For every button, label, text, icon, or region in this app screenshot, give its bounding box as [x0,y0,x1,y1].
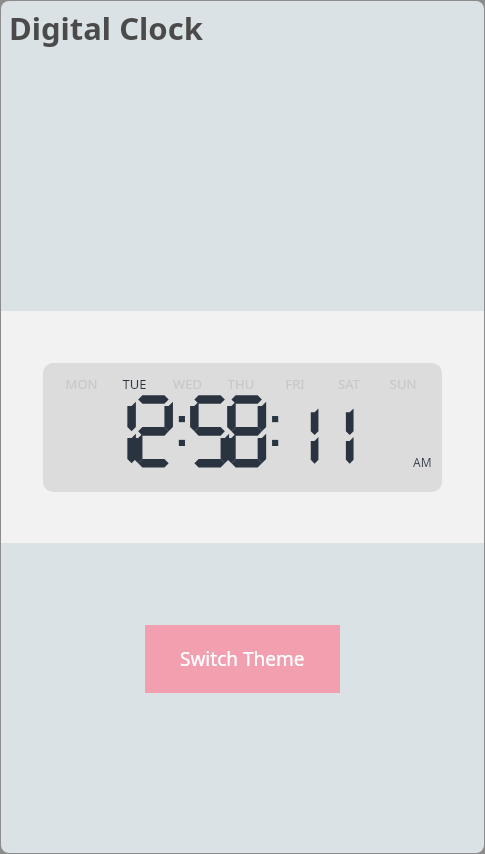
staticText: SAT [322,375,376,393]
staticText: MON [55,375,108,393]
staticText: Switch Theme [180,646,305,672]
staticText: FRI [268,375,322,393]
staticText: AM [413,454,432,470]
staticText: WED [161,375,214,393]
staticText: Digital Clock [9,7,203,49]
button[interactable]: Switch Theme [145,625,340,693]
staticText: TUE [108,375,161,393]
staticText: SUN [376,375,430,393]
staticText: THU [214,375,268,393]
